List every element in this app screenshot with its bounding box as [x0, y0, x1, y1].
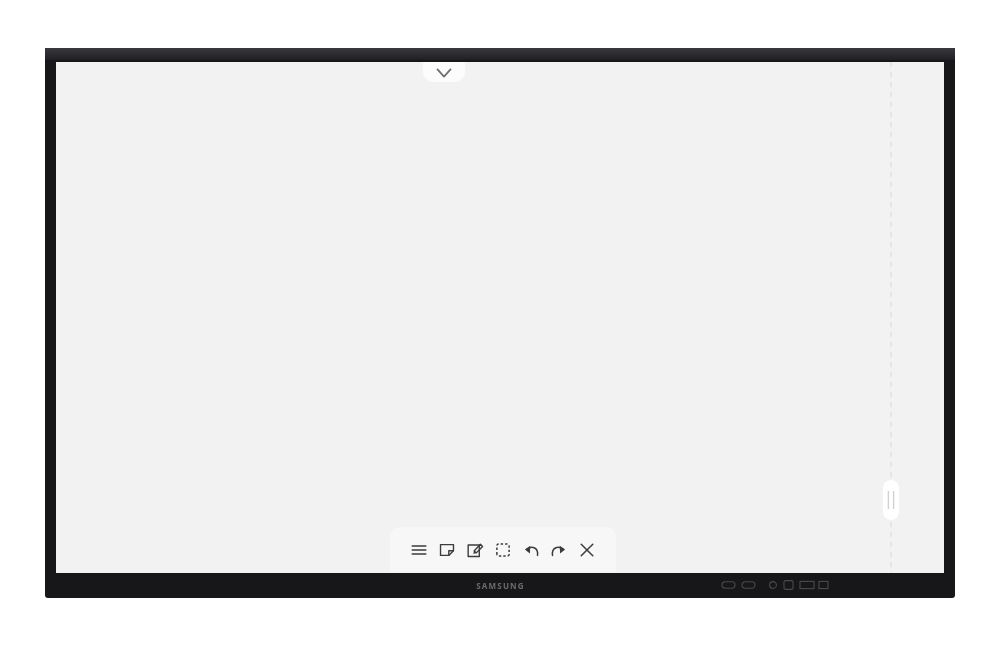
button[interactable]: New page [436, 539, 458, 561]
button[interactable]: Edit page [464, 539, 486, 561]
button[interactable]: Undo [520, 539, 542, 561]
button[interactable]: Select [492, 539, 514, 561]
button[interactable]: Close [576, 539, 598, 561]
button[interactable]: Menu [408, 539, 430, 561]
button[interactable]: Show menu [423, 62, 465, 82]
button[interactable]: Resize panel handle [883, 480, 899, 520]
button[interactable]: Redo [548, 539, 570, 561]
staticText: SAMSUNG [476, 580, 525, 591]
